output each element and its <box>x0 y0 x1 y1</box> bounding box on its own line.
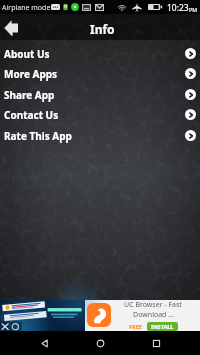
button[interactable]: About Us <box>0 43 200 64</box>
button[interactable]: INSTALL <box>147 322 178 331</box>
button[interactable]: Back <box>4 20 18 36</box>
staticText: UC Browser - Fast <box>124 300 182 310</box>
staticText: About Us <box>4 47 50 61</box>
button[interactable]: Home <box>88 331 112 355</box>
staticText: Contact Us <box>4 108 59 122</box>
staticText: Download ... <box>133 310 174 320</box>
button[interactable]: Contact Us <box>0 104 200 125</box>
staticText: More Apps <box>4 67 58 81</box>
button[interactable]: Share App <box>0 84 200 105</box>
button[interactable]: Recent apps <box>144 331 168 355</box>
button[interactable]: Back <box>32 331 56 355</box>
staticText: Airplane mode <box>2 3 51 13</box>
staticText: Info <box>90 21 115 37</box>
staticText: PM <box>189 6 198 13</box>
staticText: INSTALL <box>151 323 174 330</box>
staticText: 10:23 <box>167 2 189 14</box>
button[interactable]: Rate This App <box>0 125 200 146</box>
button[interactable]: More Apps <box>0 63 200 84</box>
staticText: FREE <box>129 323 142 330</box>
staticText: Share App <box>4 88 55 102</box>
button[interactable]: UC Browser - Fast <box>0 300 200 331</box>
staticText: Rate This App <box>4 129 72 143</box>
